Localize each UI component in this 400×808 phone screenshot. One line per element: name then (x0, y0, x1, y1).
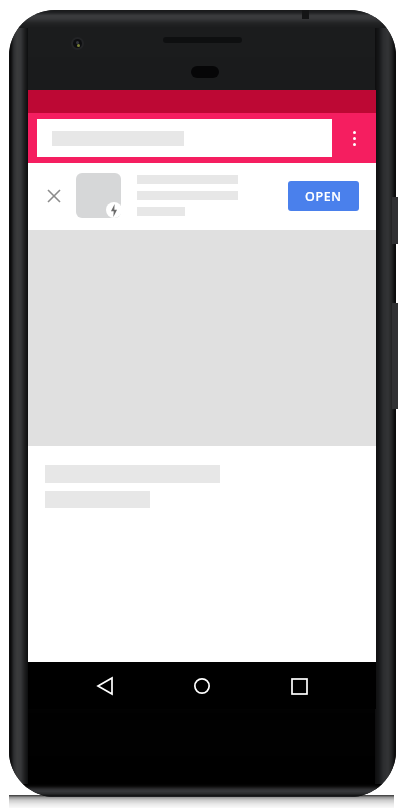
button[interactable]: Back (82, 663, 128, 709)
button[interactable]: Dismiss (28, 163, 376, 230)
button[interactable]: OPEN (288, 181, 359, 211)
button[interactable] (37, 119, 332, 157)
button[interactable]: Dismiss (36, 178, 71, 213)
button[interactable]: Recent apps (276, 663, 322, 709)
staticText: OPEN (305, 188, 342, 205)
button[interactable]: More options (332, 113, 376, 163)
button[interactable]: Home (179, 663, 225, 709)
